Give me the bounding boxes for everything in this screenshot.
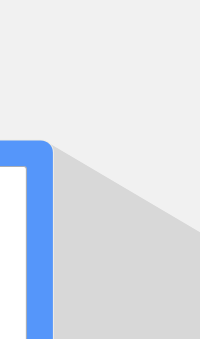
button[interactable]: Card bbox=[0, 0, 200, 339]
